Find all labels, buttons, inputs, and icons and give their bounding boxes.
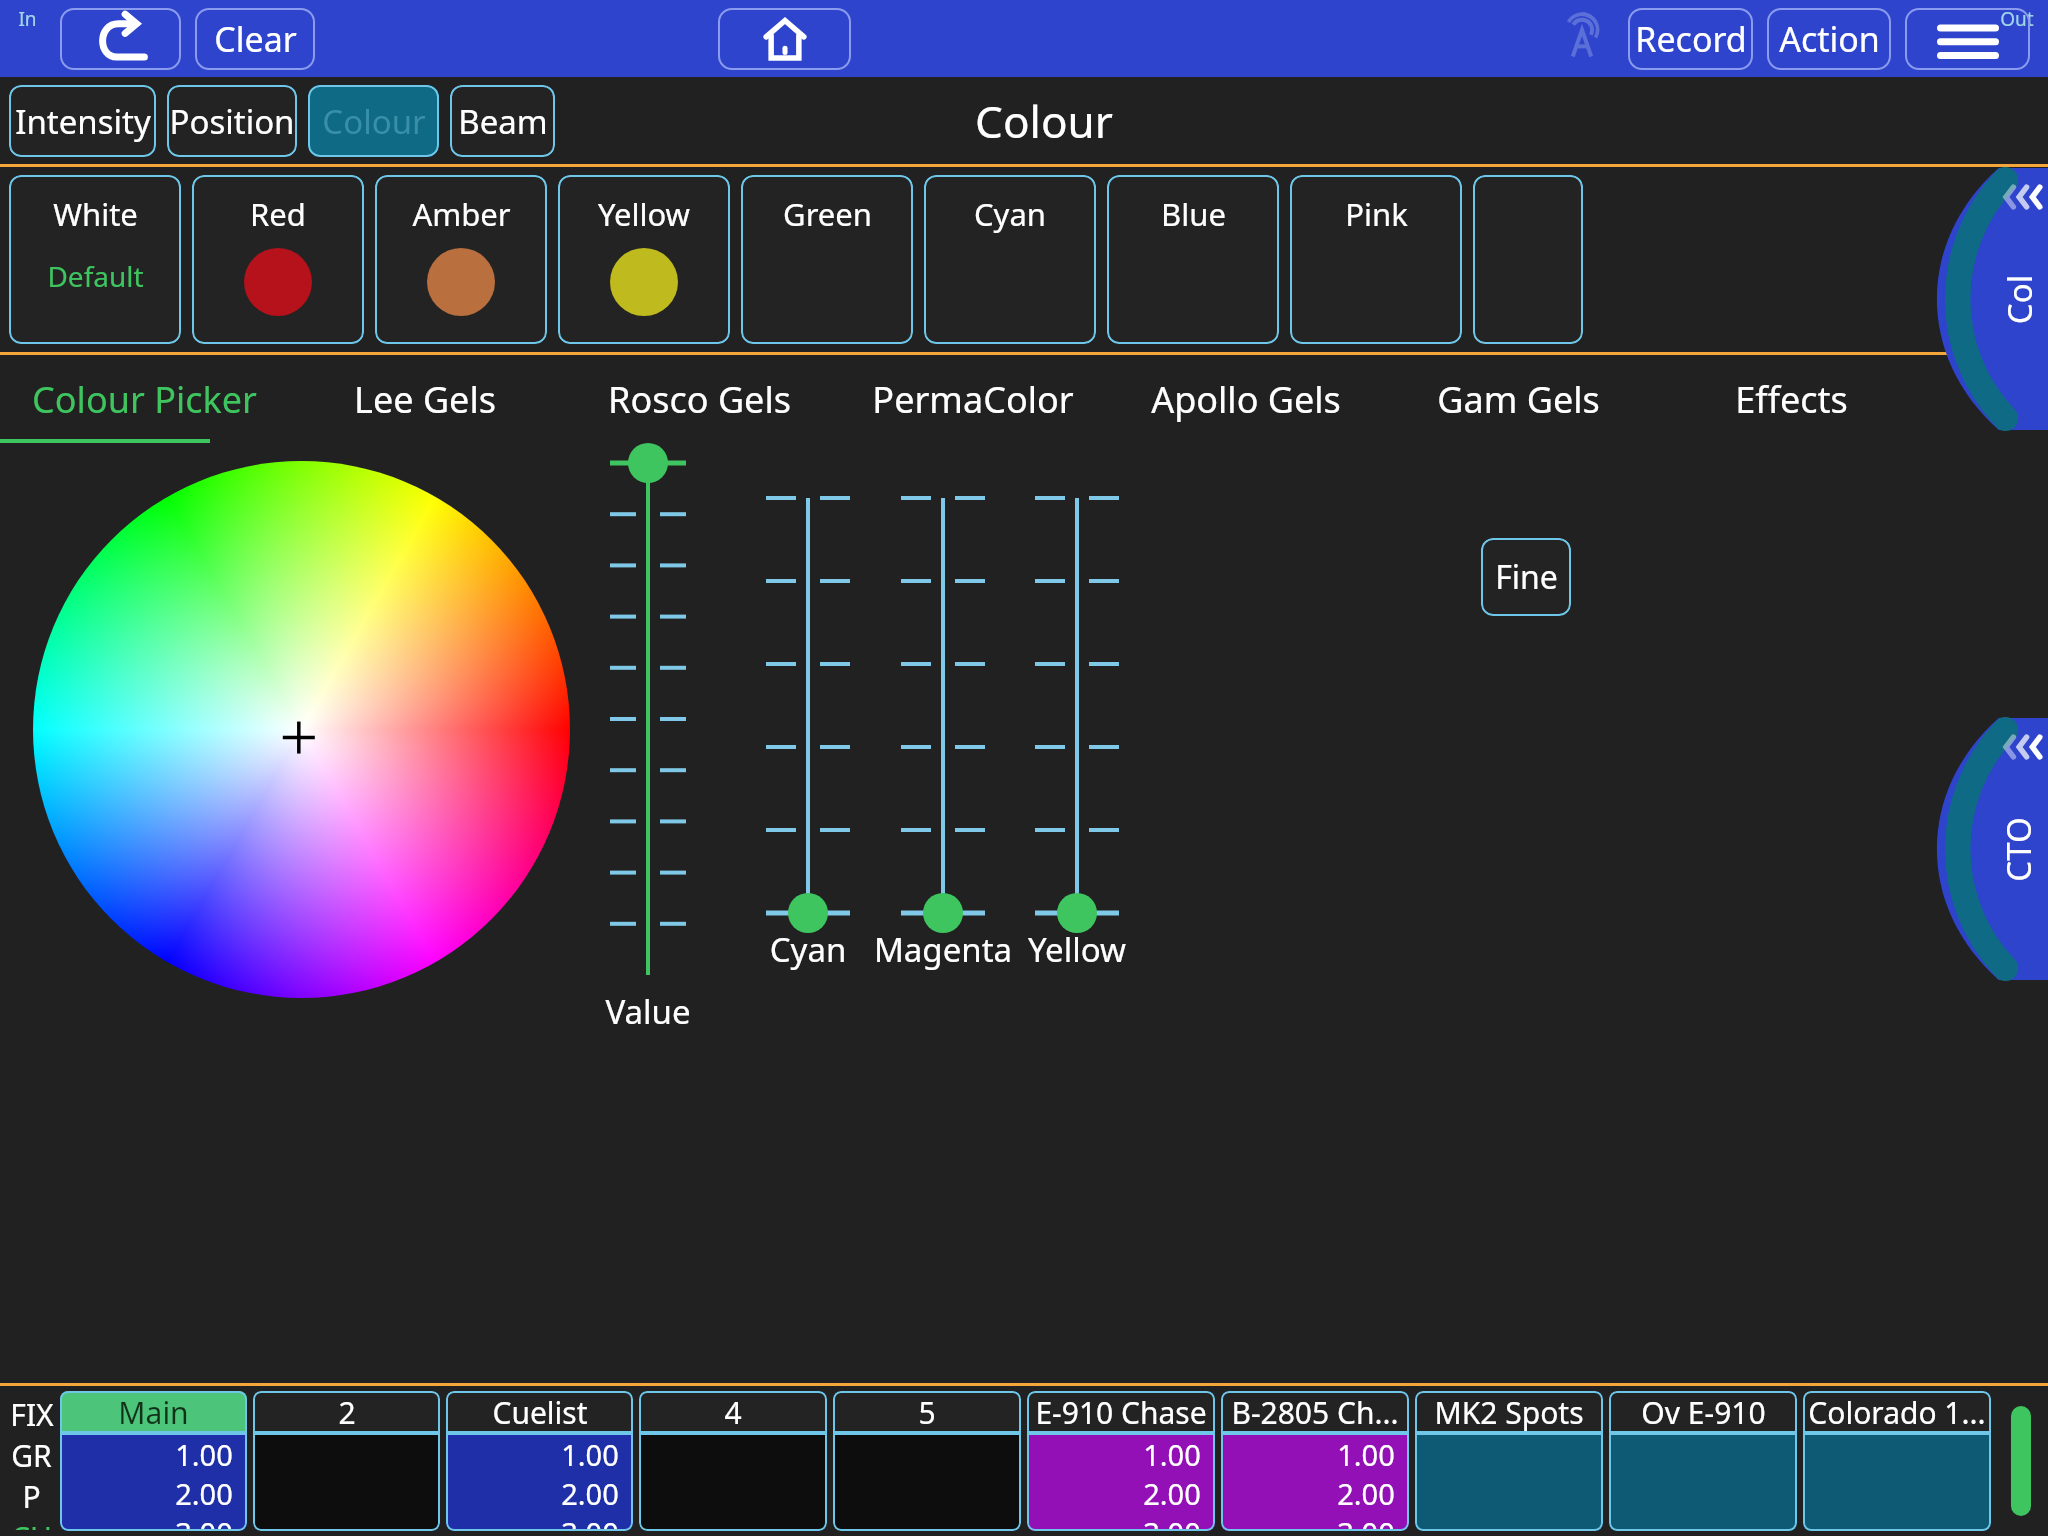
staticText: CTO [1996,817,2041,882]
button[interactable]: FIX [10,1394,54,1435]
button[interactable]: Rosco Gels [562,355,836,443]
staticText: Colour Picker [32,375,257,424]
button[interactable]: Apollo Gels [1109,355,1382,443]
button[interactable]: 4 [639,1391,827,1531]
staticText: PermaColor [872,375,1074,424]
button[interactable]: Ov E-910 [1609,1391,1797,1531]
staticText: Effects [1735,375,1848,424]
staticText: Intensity [15,99,151,144]
staticText: Main [118,1392,189,1433]
button[interactable]: 2 [253,1391,440,1531]
staticText: Colorado 1... [1808,1392,1986,1433]
button[interactable]: Amber [375,175,547,344]
staticText: MK2 Spots [1434,1392,1584,1433]
staticText: 1.00 [561,1435,619,1474]
staticText: Blue [1161,193,1226,235]
staticText: 3.00 [1143,1513,1201,1531]
button[interactable]: MK2 Spots [1415,1391,1603,1531]
button[interactable]: Pink [1290,175,1462,344]
staticText: Gam Gels [1437,375,1600,424]
staticText: 1.00 [1337,1435,1395,1474]
staticText: Colour [975,91,1113,151]
staticText: Amber [412,193,511,235]
staticText: Out [2000,6,2034,32]
staticText: Apollo Gels [1151,375,1341,424]
button[interactable]: B-2805 Ch... [1221,1391,1409,1531]
button[interactable]: Main [60,1391,247,1531]
button[interactable]: Action [1767,8,1891,70]
staticText: Fine [1495,555,1558,599]
staticText: 5 [918,1392,936,1433]
staticText: 1.00 [175,1435,233,1474]
button[interactable]: 5 [833,1391,1021,1531]
staticText: 2.00 [1143,1474,1201,1513]
staticText: Red [250,193,306,235]
staticText: B-2805 Ch... [1231,1392,1399,1433]
staticText: 2.00 [561,1474,619,1513]
button[interactable]: Clear [195,8,315,70]
button[interactable]: Lee Gels [288,355,562,443]
staticText: 3.00 [561,1513,619,1531]
staticText: Cyan [738,927,878,972]
staticText: 2.00 [175,1474,233,1513]
staticText: Col [1996,274,2041,324]
staticText: Magenta [873,927,1013,972]
staticText: Position [169,99,295,144]
button[interactable]: Colorado 1... [1803,1391,1991,1531]
button[interactable]: Wireless [1554,11,1610,67]
button[interactable]: Yellow [558,175,730,344]
button[interactable]: Cyan [924,175,1096,344]
button[interactable]: Record [1628,8,1753,70]
staticText: 3.00 [1337,1513,1395,1531]
button[interactable]: Green [741,175,913,344]
button[interactable]: Col [1963,168,2048,430]
staticText: Green [783,193,872,235]
button[interactable]: Home [718,8,851,70]
staticText: Record [1635,16,1747,62]
staticText: 1.00 [1143,1435,1201,1474]
staticText: Yellow [598,193,690,235]
staticText: Cuelist [492,1392,588,1433]
staticText: Lee Gels [354,375,496,424]
button[interactable]: Fine [1481,538,1571,616]
staticText: Value [578,989,718,1034]
staticText: 4 [724,1392,742,1433]
button[interactable]: E-910 Chase [1027,1391,1215,1531]
button[interactable]: Blue [1107,175,1279,344]
staticText: Default [47,257,144,295]
button[interactable]: Effects [1655,355,1928,443]
staticText: Cyan [974,193,1046,235]
button[interactable]: Gam Gels [1382,355,1655,443]
button[interactable]: GRP [6,1435,57,1517]
staticText: Pink [1345,193,1408,235]
button[interactable]: Red [192,175,364,344]
button[interactable]: Menu [1905,8,2030,70]
staticText: Yellow [1007,927,1147,972]
button[interactable]: PermaColor [836,355,1109,443]
button[interactable]: White [9,175,181,344]
button[interactable] [1473,175,1583,344]
staticText: Beam [458,99,548,144]
button[interactable]: Intensity [9,85,156,157]
staticText: Clear [214,16,297,62]
staticText: Colour [322,99,426,144]
button[interactable]: Colour Picker [0,355,288,443]
button[interactable]: Beam [450,85,555,157]
staticText: 2 [338,1392,356,1433]
staticText: In [18,6,37,32]
staticText: E-910 Chase [1035,1392,1207,1433]
staticText: 3.00 [175,1513,233,1531]
button[interactable]: Undo [60,8,181,70]
staticText: 2.00 [1337,1474,1395,1513]
button[interactable]: CUE [6,1517,57,1530]
button[interactable]: Colour [308,85,439,157]
button[interactable]: Position [167,85,297,157]
staticText: White [53,193,138,235]
button[interactable]: CTO [1963,718,2048,980]
staticText: Ov E-910 [1641,1392,1766,1433]
button[interactable]: Cuelist [446,1391,633,1531]
staticText: Rosco Gels [608,375,791,424]
staticText: Action [1779,16,1880,62]
button[interactable]: Master fader [2011,1406,2031,1516]
